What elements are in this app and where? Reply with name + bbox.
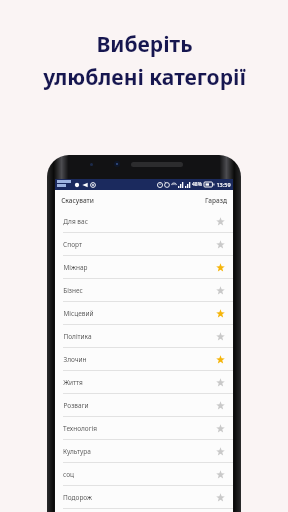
other: Remove favourite bbox=[214, 353, 226, 365]
other: Add favourite bbox=[214, 330, 226, 342]
button[interactable]: Розваги bbox=[55, 394, 233, 417]
staticText: 48% bbox=[192, 181, 202, 188]
button[interactable]: соц bbox=[55, 463, 233, 486]
other: Add favourite bbox=[214, 284, 226, 296]
staticText: Скасувати bbox=[61, 196, 94, 205]
staticText: Технологія bbox=[63, 424, 97, 433]
button[interactable]: Спорт bbox=[55, 233, 233, 256]
other: Add favourite bbox=[214, 422, 226, 434]
button[interactable]: Місцевий bbox=[55, 302, 233, 325]
button[interactable]: Бізнес bbox=[55, 279, 233, 302]
staticText: улюблені категорії bbox=[43, 63, 246, 92]
button[interactable]: Політика bbox=[55, 325, 233, 348]
button[interactable]: Технологія bbox=[55, 417, 233, 440]
staticText: Розваги bbox=[63, 401, 89, 410]
button[interactable]: Міжнар bbox=[55, 256, 233, 279]
staticText: Бізнес bbox=[63, 286, 83, 295]
staticText: Гаразд bbox=[205, 196, 227, 205]
button[interactable]: Гаразд bbox=[199, 193, 233, 208]
staticText: Міжнар bbox=[63, 263, 88, 272]
staticText: Спорт bbox=[63, 240, 82, 249]
staticText: Культура bbox=[63, 447, 91, 456]
staticText: Життя bbox=[63, 378, 83, 387]
staticText: 13:59 bbox=[216, 181, 231, 188]
button[interactable]: Життя bbox=[55, 371, 233, 394]
button[interactable]: Злочин bbox=[55, 348, 233, 371]
staticText: Подорож bbox=[63, 493, 92, 502]
other: Add favourite bbox=[214, 238, 226, 250]
other: Add favourite bbox=[214, 215, 226, 227]
staticText: Для вас bbox=[63, 217, 88, 226]
other: Add favourite bbox=[214, 491, 226, 503]
button[interactable]: Скасувати bbox=[55, 193, 100, 208]
other: Add favourite bbox=[214, 468, 226, 480]
other: Remove favourite bbox=[214, 307, 226, 319]
staticText: соц bbox=[63, 470, 74, 479]
button[interactable]: Для вас bbox=[55, 210, 233, 233]
button[interactable]: Подорож bbox=[55, 486, 233, 509]
other: Add favourite bbox=[214, 399, 226, 411]
staticText: Виберіть bbox=[96, 30, 193, 59]
staticText: Місцевий bbox=[63, 309, 94, 318]
staticText: Політика bbox=[63, 332, 92, 341]
staticText: Злочин bbox=[63, 355, 87, 364]
other: Remove favourite bbox=[214, 261, 226, 273]
button[interactable]: Культура bbox=[55, 440, 233, 463]
other: Add favourite bbox=[214, 376, 226, 388]
other: Add favourite bbox=[214, 445, 226, 457]
